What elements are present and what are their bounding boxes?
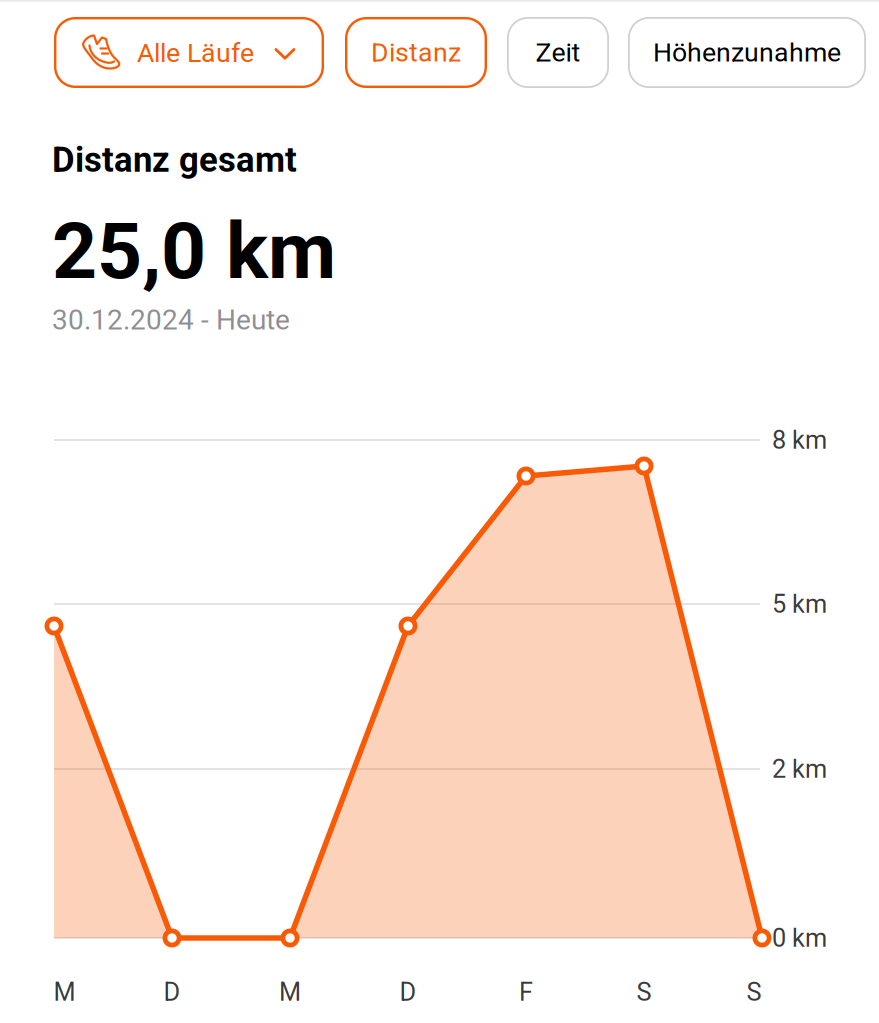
staticText: D	[399, 977, 416, 1007]
button[interactable]: Distanz	[345, 17, 487, 88]
staticText: D	[163, 977, 180, 1007]
button[interactable]: Zeit	[507, 17, 609, 88]
button[interactable]: Höhenzunahme	[628, 17, 866, 88]
staticText: 25,0 km	[52, 205, 336, 297]
staticText: 8 km	[772, 425, 827, 455]
staticText: Distanz gesamt	[52, 140, 297, 180]
staticText: Alle Läufe	[137, 37, 254, 69]
staticText: Höhenzunahme	[653, 37, 841, 68]
staticText: Zeit	[535, 37, 580, 68]
staticText: S	[636, 977, 651, 1007]
button[interactable]: Alle Läufe	[54, 17, 324, 88]
staticText: 30.12.2024 - Heute	[52, 304, 290, 336]
staticText: F	[519, 977, 533, 1007]
staticText: M	[53, 977, 75, 1007]
staticText: Distanz	[371, 37, 461, 68]
staticText: 0 km	[772, 923, 827, 953]
staticText: 2 km	[772, 754, 827, 784]
staticText: S	[746, 977, 761, 1007]
staticText: 5 km	[772, 589, 827, 619]
staticText: M	[279, 977, 301, 1007]
